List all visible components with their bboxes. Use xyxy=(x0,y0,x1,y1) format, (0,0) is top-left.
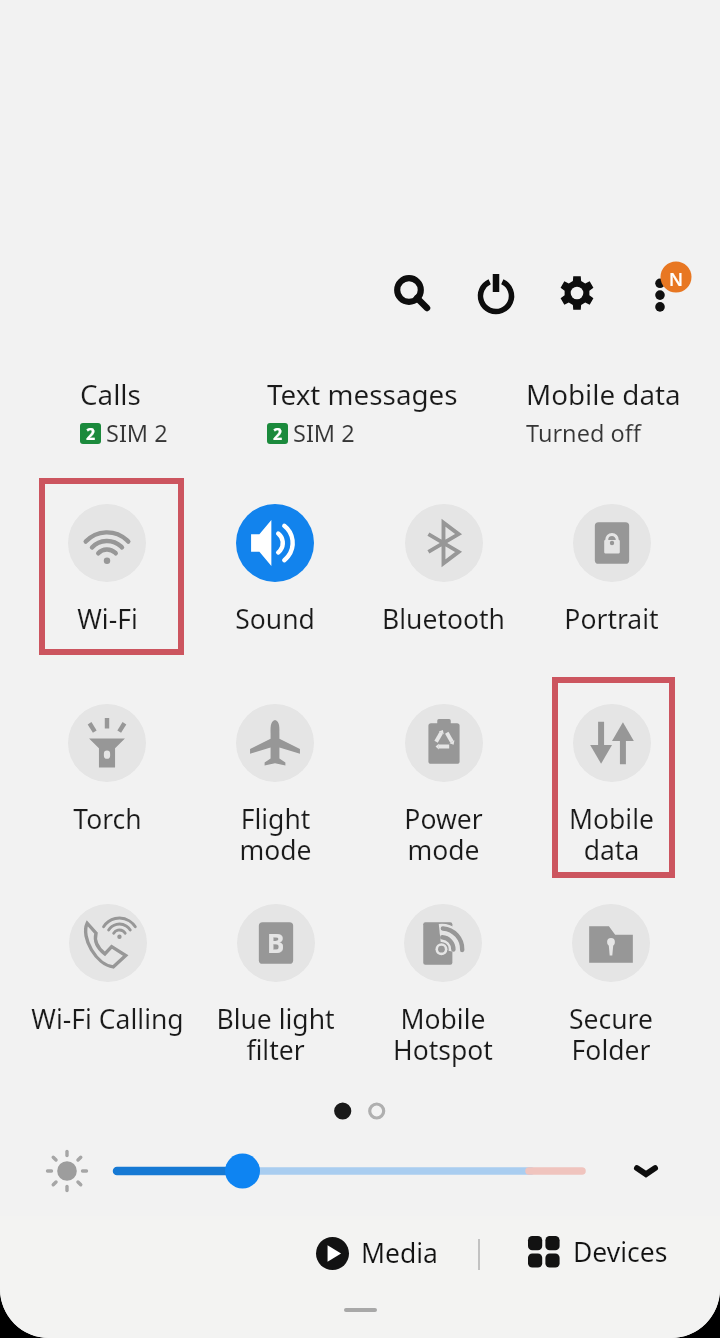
button[interactable]: Media xyxy=(308,1226,446,1280)
staticText: Blue light filter xyxy=(216,1001,335,1068)
button[interactable]: Portrait xyxy=(528,498,694,637)
button[interactable]: Settings xyxy=(550,266,604,320)
staticText: Power mode xyxy=(404,801,483,868)
staticText: Torch xyxy=(73,801,142,837)
staticText: 2 xyxy=(273,423,283,444)
staticText: SIM 2 xyxy=(106,417,168,449)
staticText: Secure Folder xyxy=(569,1001,653,1068)
staticText: Flight mode xyxy=(239,801,312,868)
button[interactable]: More options xyxy=(637,262,699,324)
button[interactable]: Secure Folder xyxy=(528,898,694,1068)
button[interactable]: Power off xyxy=(469,266,523,320)
staticText: Wi-Fi Calling xyxy=(31,1001,184,1037)
staticText: Sound xyxy=(235,601,315,637)
staticText: Turned off xyxy=(526,417,641,449)
button[interactable]: Wi-Fi Calling xyxy=(24,898,190,1037)
staticText: 2 xyxy=(86,423,96,444)
staticText: Mobile data xyxy=(526,375,681,413)
button[interactable]: Sound xyxy=(192,498,358,637)
button[interactable]: Flight mode xyxy=(192,698,358,868)
staticText: N xyxy=(669,267,683,292)
button[interactable]: Search xyxy=(384,266,438,320)
staticText: Media xyxy=(361,1235,438,1271)
button[interactable]: Mobile data xyxy=(528,698,694,868)
staticText: B xyxy=(267,925,285,960)
button[interactable]: Torch xyxy=(24,698,190,837)
staticText: Calls xyxy=(80,375,141,413)
button[interactable]: B xyxy=(192,898,358,1068)
button[interactable]: Power mode xyxy=(360,698,526,868)
staticText: SIM 2 xyxy=(293,417,355,449)
staticText: Text messages xyxy=(267,375,458,413)
button[interactable]: Mobile Hotspot xyxy=(360,898,526,1068)
staticText: Mobile data xyxy=(569,801,654,868)
button[interactable]: Expand quick settings xyxy=(622,1148,670,1194)
staticText: Wi-Fi xyxy=(77,601,138,637)
staticText: Devices xyxy=(573,1234,668,1270)
button[interactable]: Devices xyxy=(520,1225,676,1279)
staticText: Portrait xyxy=(564,601,659,637)
staticText: Mobile Hotspot xyxy=(393,1001,493,1068)
button[interactable]: Bluetooth xyxy=(360,498,526,637)
staticText: Bluetooth xyxy=(382,601,505,637)
button[interactable]: Wi-Fi xyxy=(24,498,190,637)
